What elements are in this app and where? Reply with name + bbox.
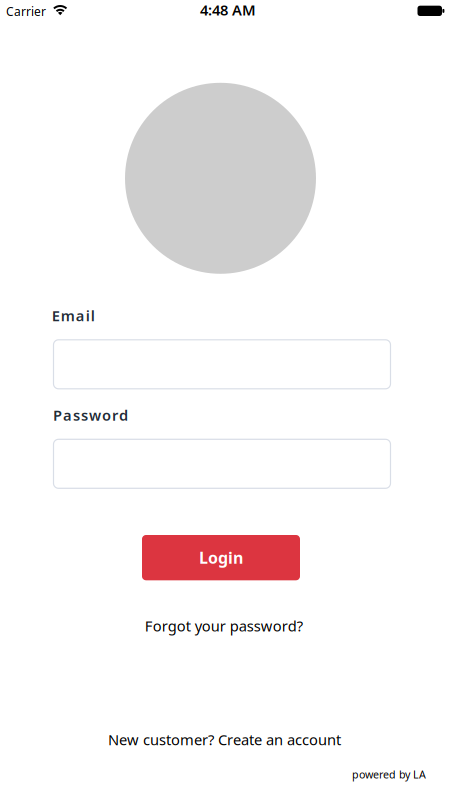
- staticText: 4:48 AM: [200, 0, 256, 20]
- button[interactable]: New customer? Create an account: [108, 730, 341, 749]
- staticText: powered by LA: [352, 767, 426, 781]
- staticText: P a s s w o r d: [53, 405, 128, 425]
- button[interactable]: Login: [142, 535, 300, 580]
- button[interactable]: Forgot your password?: [145, 616, 303, 636]
- staticText: Login: [199, 547, 243, 568]
- staticText: Carrier: [6, 3, 46, 19]
- staticText: New customer? Create an account: [108, 730, 341, 749]
- staticText: Forgot your password?: [145, 616, 303, 636]
- staticText: E m a i l: [52, 306, 95, 325]
